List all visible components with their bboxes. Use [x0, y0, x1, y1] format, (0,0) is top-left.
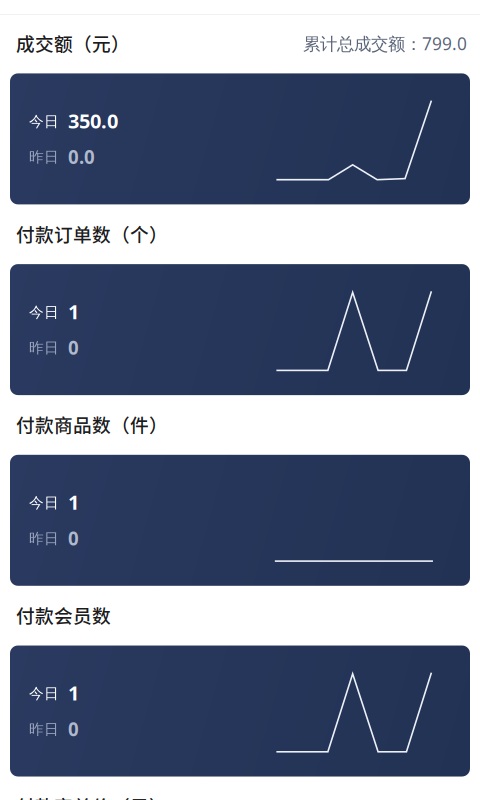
button[interactable]: 今日 — [10, 264, 470, 395]
staticText: 付款客单价（元） — [16, 792, 168, 800]
staticText: 成交额（元） — [16, 29, 130, 56]
staticText: 今日 — [29, 112, 59, 130]
staticText: 今日 — [29, 685, 59, 703]
staticText: 1 — [68, 489, 79, 515]
staticText: 0 — [68, 716, 79, 741]
staticText: 350.0 — [68, 107, 118, 134]
staticText: 昨日 — [29, 339, 59, 357]
button[interactable]: 今日 — [10, 455, 470, 586]
staticText: 0.0 — [68, 144, 95, 169]
staticText: 0 — [68, 335, 79, 360]
staticText: 昨日 — [29, 148, 59, 166]
staticText: 付款商品数（件） — [16, 411, 168, 438]
staticText: 1 — [68, 679, 79, 706]
staticText: 昨日 — [29, 720, 59, 738]
button[interactable]: 今日 — [10, 645, 470, 776]
staticText: 今日 — [29, 494, 59, 512]
staticText: 0 — [68, 526, 79, 551]
button[interactable]: 今日 — [10, 73, 470, 204]
staticText: 今日 — [29, 303, 59, 321]
staticText: 付款会员数 — [16, 601, 111, 628]
staticText: 付款订单数（个） — [16, 220, 168, 247]
staticText: 昨日 — [29, 529, 59, 547]
staticText: 累计总成交额：799.0 — [303, 32, 467, 55]
staticText: 1 — [68, 298, 79, 325]
